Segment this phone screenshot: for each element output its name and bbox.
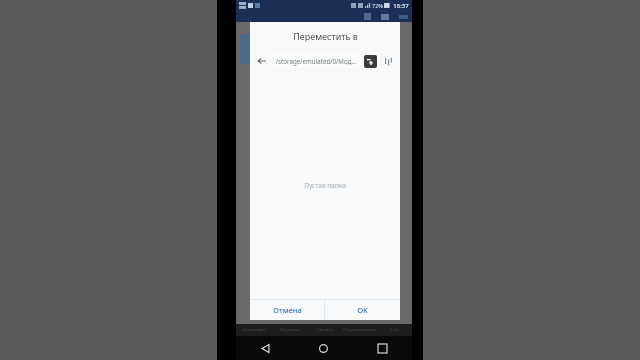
button[interactable]: OK <box>325 300 400 320</box>
button[interactable]: Back <box>236 336 294 360</box>
staticText: /storage/emulated/0/Моды… <box>274 57 358 65</box>
staticText: 72% <box>372 2 383 9</box>
button[interactable]: Отмена <box>250 300 324 320</box>
staticText: Переместить в <box>293 30 358 42</box>
button[interactable]: Sort options <box>382 55 395 68</box>
staticText: Переименовать <box>343 327 376 333</box>
staticText: Удалить <box>316 327 333 333</box>
staticText: Копировать <box>242 327 267 333</box>
button[interactable]: Up one level <box>255 54 269 68</box>
button[interactable]: Копировать <box>236 324 272 336</box>
button[interactable]: Переименовать <box>342 324 377 336</box>
button[interactable]: New folder <box>364 55 377 68</box>
staticText: OK <box>357 305 368 315</box>
button[interactable]: /storage/emulated/0/Моды… <box>271 54 361 68</box>
button[interactable]: Recents <box>353 336 412 360</box>
staticText: 16:37 <box>393 2 409 10</box>
staticText: Ещё <box>390 327 399 333</box>
staticText: Пустая папка <box>304 181 346 190</box>
button[interactable]: Home <box>294 336 353 360</box>
staticText: Вырезать <box>280 327 300 333</box>
button[interactable]: Вырезать <box>272 324 307 336</box>
button[interactable]: Удалить <box>307 324 342 336</box>
staticText: Отмена <box>273 305 302 315</box>
